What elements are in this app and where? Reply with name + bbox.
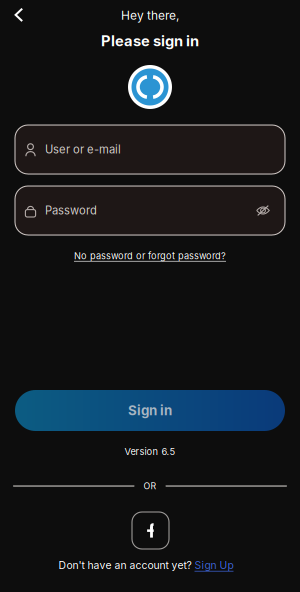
staticText: Password <box>45 204 97 217</box>
button[interactable]: Back <box>5 1 33 29</box>
button[interactable]: Show password <box>256 204 270 217</box>
staticText: Please sign in <box>101 32 199 50</box>
staticText: User or e-mail <box>45 143 121 156</box>
button[interactable]: Sign in <box>15 390 285 431</box>
button[interactable]: Sign Up <box>194 559 233 572</box>
staticText: No password or forgot password? <box>74 250 226 261</box>
staticText: Version 6.5 <box>124 446 175 457</box>
staticText: Sign Up <box>194 559 233 572</box>
staticText: Hey there, <box>121 8 179 22</box>
staticText: Don't have an account yet? <box>58 559 191 572</box>
staticText: Sign in <box>128 402 172 418</box>
button[interactable]: No password or forgot password? <box>0 249 300 263</box>
staticText: OR <box>143 481 156 491</box>
button[interactable]: Sign in with Facebook <box>132 512 169 549</box>
